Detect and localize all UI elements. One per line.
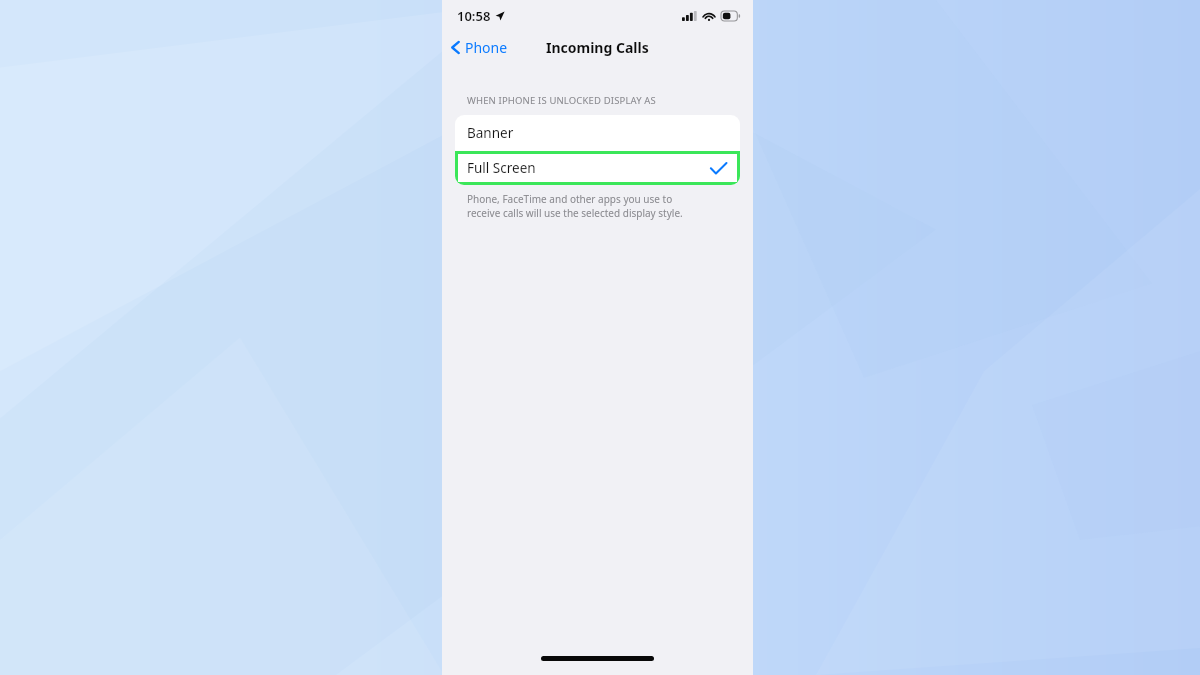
staticText: Phone bbox=[465, 38, 508, 57]
staticText: Phone, FaceTime and other apps you use t… bbox=[467, 192, 673, 206]
button[interactable]: Full Screen bbox=[455, 151, 740, 185]
other: Selected bbox=[710, 162, 727, 175]
button[interactable]: Banner bbox=[455, 115, 740, 151]
staticText: WHEN IPHONE IS UNLOCKED DISPLAY AS bbox=[467, 94, 656, 107]
staticText: receive calls will use the selected disp… bbox=[467, 206, 683, 220]
button[interactable]: Phone bbox=[447, 34, 511, 61]
staticText: Banner bbox=[467, 124, 514, 142]
staticText: Full Screen bbox=[467, 159, 536, 177]
staticText: Incoming Calls bbox=[546, 38, 649, 57]
staticText: 10:58 bbox=[457, 7, 491, 25]
